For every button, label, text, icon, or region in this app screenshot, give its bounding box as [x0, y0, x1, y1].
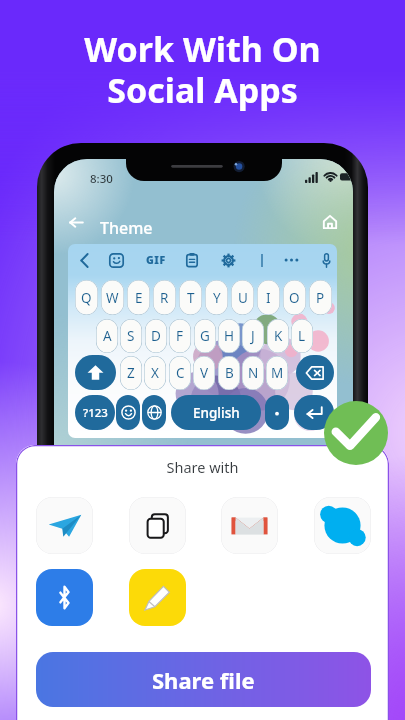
staticText: D [151, 327, 161, 345]
staticText: Q [81, 289, 92, 307]
button[interactable]: T [179, 280, 202, 315]
button[interactable]: W [101, 280, 124, 315]
staticText: G [200, 327, 210, 345]
button[interactable]: Stickers [105, 249, 127, 271]
button[interactable]: R [153, 280, 176, 315]
button[interactable]: C [169, 356, 191, 390]
staticText: C [176, 364, 185, 382]
staticText: L [298, 327, 306, 345]
button[interactable]: Bluetooth [36, 569, 93, 626]
staticText: Share file [152, 665, 255, 695]
staticText: Share with [16, 457, 389, 477]
button[interactable]: D [145, 319, 167, 353]
button[interactable]: English [171, 395, 261, 430]
staticText: T [187, 289, 195, 307]
staticText: O [289, 289, 300, 307]
staticText: B [225, 364, 234, 382]
button[interactable]: Language [142, 395, 166, 430]
button[interactable]: Collapse [73, 249, 95, 271]
staticText: English [193, 404, 240, 422]
button[interactable]: J [242, 319, 264, 353]
button[interactable]: Clipboard [181, 249, 203, 271]
button[interactable]: A [96, 319, 118, 353]
button[interactable]: Shift [75, 355, 116, 390]
staticText: I [266, 289, 271, 307]
button[interactable]: ?123 [75, 395, 115, 430]
button[interactable]: Q [75, 280, 98, 315]
button[interactable]: Z [120, 356, 142, 390]
button[interactable]: Done [324, 401, 388, 465]
staticText: 8:30 [90, 171, 113, 187]
staticText: K [274, 327, 283, 345]
button[interactable]: Copy link [129, 497, 186, 554]
staticText: GIF [146, 253, 166, 267]
button[interactable]: Back [55, 208, 98, 236]
staticText: V [200, 364, 209, 382]
button[interactable]: X [144, 356, 166, 390]
staticText: E [135, 289, 143, 307]
staticText: H [224, 327, 235, 345]
staticText: F [176, 327, 184, 345]
staticText: Y [213, 289, 221, 307]
button[interactable]: G [194, 319, 216, 353]
staticText: X [151, 364, 159, 382]
button[interactable]: Settings [217, 249, 239, 271]
button[interactable]: Share file [36, 652, 371, 707]
button[interactable]: N [242, 356, 264, 390]
button[interactable]: More [280, 249, 302, 271]
staticText: R [160, 289, 169, 307]
button[interactable]: Enter [294, 395, 334, 430]
button[interactable]: I [257, 280, 280, 315]
button[interactable]: Telegram [36, 497, 93, 554]
button[interactable]: Gmail [221, 497, 278, 554]
button[interactable]: Voice input [315, 249, 337, 271]
button[interactable]: H [218, 319, 240, 353]
button[interactable]: O [283, 280, 306, 315]
staticText: A [103, 327, 112, 345]
button[interactable]: F [169, 319, 191, 353]
staticText: Work With On Social Apps [0, 26, 405, 113]
button[interactable]: B [218, 356, 240, 390]
staticText: W [106, 289, 119, 307]
button[interactable]: U [231, 280, 254, 315]
button[interactable]: Edit [129, 569, 186, 626]
staticText: U [238, 289, 248, 307]
button[interactable]: GIF [145, 249, 167, 271]
button[interactable]: Period [265, 395, 289, 430]
staticText: ?123 [83, 405, 108, 421]
button[interactable]: Y [205, 280, 228, 315]
staticText: Theme [100, 217, 153, 239]
staticText: N [248, 364, 259, 382]
button[interactable]: E [127, 280, 150, 315]
button[interactable]: V [193, 356, 215, 390]
button[interactable]: L [291, 319, 313, 353]
button[interactable]: Skype [314, 497, 371, 554]
button[interactable]: M [266, 356, 288, 390]
staticText: Z [127, 364, 135, 382]
button[interactable]: Emoji [116, 395, 140, 430]
button[interactable]: K [267, 319, 289, 353]
staticText: M [271, 364, 284, 382]
button[interactable]: S [120, 319, 142, 353]
staticText: J [251, 327, 255, 345]
staticText: S [127, 327, 135, 345]
button[interactable]: P [309, 280, 332, 315]
staticText: P [316, 289, 325, 307]
button[interactable]: Home [309, 208, 351, 236]
button[interactable]: Backspace [296, 355, 334, 390]
